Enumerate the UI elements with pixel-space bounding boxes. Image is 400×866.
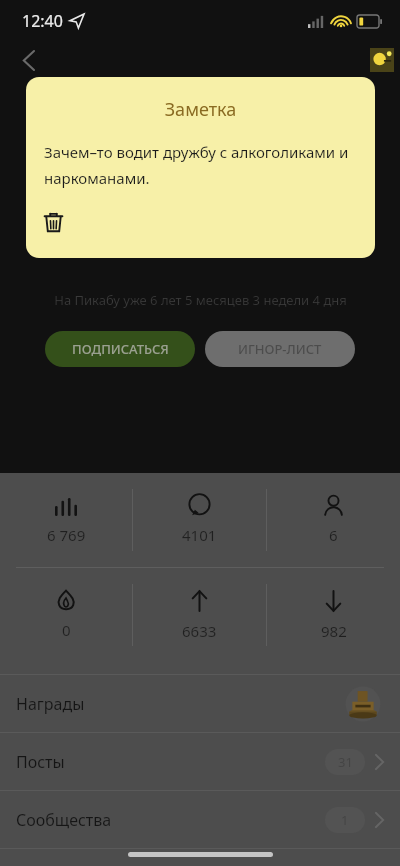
button[interactable]: Back: [8, 42, 48, 78]
button[interactable]: Avatar: [368, 46, 396, 74]
button[interactable]: 6 769: [0, 473, 132, 567]
button[interactable]: Заметка: [26, 77, 375, 258]
button[interactable]: ПОДПИСАТЬСЯ: [45, 331, 195, 367]
staticText: 1: [341, 811, 349, 829]
button[interactable]: 0: [0, 568, 132, 662]
button[interactable]: Delete note: [44, 206, 76, 238]
staticText: 12:40: [22, 10, 63, 32]
staticText: Сообщества: [16, 809, 112, 831]
staticText: На Пикабу уже 6 лет 5 месяцев 3 недели 4…: [54, 291, 347, 309]
button[interactable]: ИГНОР-ЛИСТ: [205, 331, 355, 367]
staticText: 6: [329, 525, 338, 545]
staticText: 0: [62, 620, 71, 640]
button[interactable]: Сообщества: [0, 791, 400, 848]
staticText: Награды: [16, 693, 85, 715]
staticText: 31: [338, 753, 353, 771]
staticText: 4101: [182, 525, 217, 545]
staticText: ИГНОР-ЛИСТ: [238, 340, 322, 358]
staticText: Посты: [16, 751, 65, 773]
button[interactable]: Награды: [0, 675, 400, 732]
staticText: 6 769: [47, 525, 86, 545]
button[interactable]: 6: [267, 473, 400, 567]
staticText: 982: [321, 621, 347, 641]
button[interactable]: 6633: [133, 568, 266, 662]
staticText: 6633: [182, 621, 217, 641]
staticText: ПОДПИСАТЬСЯ: [72, 340, 169, 358]
button[interactable]: 982: [267, 568, 400, 662]
button[interactable]: Посты: [0, 733, 400, 790]
button[interactable]: 4101: [133, 473, 266, 567]
staticText: Зачем–то водит дружбу с алкоголиками и н…: [44, 142, 357, 189]
staticText: Заметка: [44, 97, 357, 122]
